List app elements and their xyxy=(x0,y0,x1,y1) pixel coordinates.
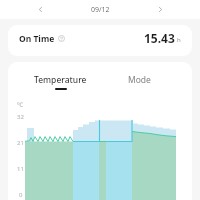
staticText: 21 xyxy=(17,139,24,147)
staticText: 11 xyxy=(17,165,24,173)
staticText: 09/12 xyxy=(91,5,110,15)
button[interactable]: Next day xyxy=(120,0,200,19)
button[interactable]: Mode xyxy=(100,62,179,94)
button[interactable]: On Time xyxy=(8,25,192,56)
staticText: h xyxy=(177,36,181,44)
staticText: Mode xyxy=(128,74,151,86)
staticText: 0 xyxy=(19,191,23,199)
button[interactable]: Previous day xyxy=(0,0,80,19)
staticText: 32 xyxy=(17,113,24,121)
staticText: 15.43 xyxy=(144,30,175,46)
button[interactable]: Temperature xyxy=(21,62,100,94)
staticText: Temperature xyxy=(34,74,87,86)
staticText: On Time xyxy=(19,33,55,45)
staticText: ℃ xyxy=(17,101,23,109)
